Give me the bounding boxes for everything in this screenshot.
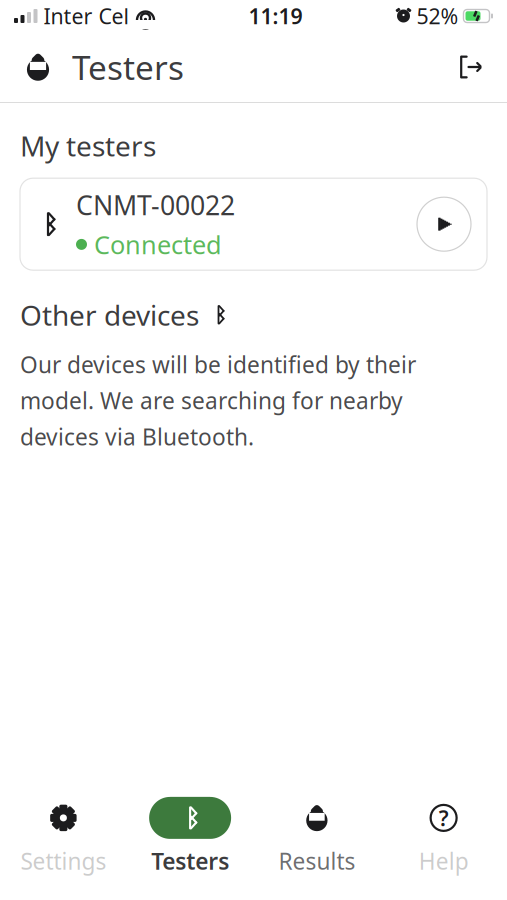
staticText: Our devices will be identified by their … <box>20 349 416 452</box>
button[interactable]: Testers <box>127 797 254 876</box>
staticText: CNMT-00022 <box>76 187 235 223</box>
staticText: My testers <box>20 127 156 164</box>
staticText: Other devices <box>20 296 199 333</box>
button[interactable]: Settings <box>0 797 127 876</box>
button[interactable]: ? <box>380 797 507 876</box>
button[interactable]: Log out <box>447 45 491 89</box>
staticText: Testers <box>151 846 229 876</box>
button[interactable]: CNMT-00022 <box>20 178 487 270</box>
staticText: 11:19 <box>248 2 302 30</box>
staticText: Help <box>419 846 469 876</box>
staticText: Testers <box>72 45 184 89</box>
button[interactable]: App logo <box>16 45 60 89</box>
staticText: 52% <box>416 2 458 30</box>
staticText: Inter Cel <box>43 2 129 30</box>
staticText: Results <box>278 846 355 876</box>
staticText: Connected <box>94 228 222 261</box>
staticText: Settings <box>20 846 106 876</box>
button[interactable]: Results <box>253 797 380 876</box>
staticText: ? <box>439 804 449 832</box>
